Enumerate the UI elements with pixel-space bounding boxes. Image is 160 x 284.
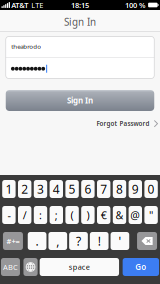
- staticText: space: [69, 262, 90, 272]
- staticText: 8: [116, 181, 123, 197]
- staticText: €: [101, 208, 107, 222]
- button[interactable]: !: [90, 232, 108, 250]
- staticText: Sign In: [67, 95, 93, 106]
- staticText: Forgot Password: [97, 119, 150, 128]
- staticText: 0: [148, 181, 155, 197]
- button[interactable]: 1: [2, 180, 16, 198]
- button[interactable]: €: [97, 206, 110, 224]
- staticText: ': [118, 233, 121, 249]
- button[interactable]: Forgot Password: [97, 117, 160, 130]
- button[interactable]: .: [28, 232, 46, 250]
- staticText: 6: [84, 181, 91, 197]
- staticText: :: [39, 208, 42, 222]
- button[interactable]: 2: [18, 180, 31, 198]
- button[interactable]: 6: [81, 180, 95, 198]
- button[interactable]: #+=: [3, 232, 23, 250]
- button[interactable]: -: [2, 206, 16, 224]
- staticText: @: [130, 208, 140, 222]
- staticText: 9: [132, 181, 139, 197]
- staticText: theabrodo: [11, 42, 41, 50]
- staticText: /: [23, 208, 27, 222]
- staticText: !: [98, 233, 101, 249]
- button[interactable]: ": [144, 206, 158, 224]
- staticText: -: [7, 208, 10, 222]
- button[interactable]: (: [65, 206, 79, 224]
- staticText: 7: [100, 181, 107, 197]
- staticText: 5: [69, 181, 76, 197]
- staticText: 100 %: [125, 0, 146, 10]
- button[interactable]: Sign In: [6, 90, 154, 111]
- staticText: ;: [55, 208, 58, 222]
- staticText: 1: [5, 181, 12, 197]
- staticText: ,: [56, 233, 59, 249]
- staticText: 3: [37, 181, 44, 197]
- button[interactable]: 4: [50, 180, 63, 198]
- button[interactable]: &: [113, 206, 126, 224]
- button[interactable]: /: [18, 206, 31, 224]
- staticText: .: [36, 233, 39, 249]
- button[interactable]: Go: [123, 258, 159, 276]
- button[interactable]: space: [40, 258, 119, 276]
- staticText: &: [115, 208, 123, 222]
- staticText: ): [86, 208, 89, 222]
- button[interactable]: ': [110, 232, 129, 250]
- button[interactable]: ,: [48, 232, 67, 250]
- button[interactable]: Next keyboard: [23, 258, 38, 276]
- button[interactable]: ): [81, 206, 95, 224]
- staticText: AT&T: [11, 0, 28, 10]
- staticText: ABC: [3, 262, 18, 272]
- button[interactable]: 0: [144, 180, 158, 198]
- button[interactable]: ABC: [1, 258, 20, 276]
- button[interactable]: @: [129, 206, 142, 224]
- button[interactable]: 7: [97, 180, 110, 198]
- staticText: ": [149, 208, 153, 222]
- staticText: 4: [53, 181, 60, 197]
- button[interactable]: ;: [50, 206, 63, 224]
- staticText: ?: [76, 233, 81, 249]
- staticText: #+=: [6, 236, 19, 246]
- button[interactable]: 9: [129, 180, 142, 198]
- staticText: 2: [21, 181, 28, 197]
- staticText: 18:15: [71, 0, 89, 10]
- staticText: Go: [135, 262, 146, 272]
- button[interactable]: 8: [113, 180, 126, 198]
- button[interactable]: Delete: [137, 232, 157, 250]
- staticText: Sign In: [64, 15, 96, 29]
- button[interactable]: :: [34, 206, 47, 224]
- button[interactable]: 5: [65, 180, 79, 198]
- staticText: (: [71, 208, 74, 222]
- staticText: LTE: [31, 0, 43, 10]
- button[interactable]: 3: [34, 180, 47, 198]
- button[interactable]: ?: [69, 232, 88, 250]
